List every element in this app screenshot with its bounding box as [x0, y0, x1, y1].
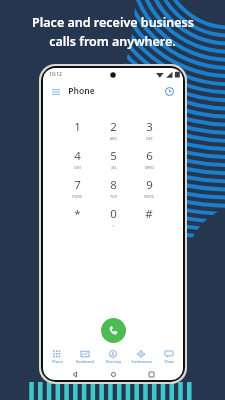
button[interactable]: Back [69, 368, 81, 380]
button[interactable]: # [131, 206, 167, 235]
staticText: 4 [74, 148, 81, 164]
button[interactable]: Call [101, 318, 126, 343]
staticText: GHI [74, 165, 81, 170]
staticText: 3 [146, 119, 153, 135]
button[interactable]: * [59, 206, 95, 235]
staticText: Directory [106, 359, 121, 364]
staticText: Phone [68, 85, 95, 97]
staticText: 5 [110, 148, 117, 164]
staticText: Phone [52, 359, 63, 364]
staticText: DEF [146, 136, 153, 141]
button[interactable]: 5 [95, 148, 131, 177]
button[interactable]: Menu [50, 86, 61, 97]
button[interactable]: Menu [50, 81, 176, 101]
staticText: # [145, 206, 153, 222]
button[interactable]: Recents [145, 368, 157, 380]
button[interactable]: Chats [155, 347, 183, 367]
button[interactable]: 7 [59, 177, 95, 206]
button[interactable]: 9 [131, 177, 167, 206]
staticText: 2 [110, 119, 117, 135]
staticText: PQRS [72, 194, 82, 199]
staticText: 7 [74, 177, 81, 193]
staticText: 1 [74, 119, 81, 135]
button[interactable]: Dashboard [71, 347, 99, 367]
staticText: 8 [110, 177, 117, 193]
staticText: Dashboard [76, 359, 94, 364]
button[interactable]: 2 [95, 119, 131, 148]
staticText: ABC [110, 136, 117, 141]
staticText: * [74, 206, 81, 222]
button[interactable]: 8 [95, 177, 131, 206]
button[interactable]: 4 [59, 148, 95, 177]
button[interactable]: 3 [131, 119, 167, 148]
button[interactable]: Recent calls [163, 85, 176, 98]
button[interactable]: Conferences [127, 347, 155, 367]
button[interactable]: 1 [59, 119, 95, 148]
staticText: WXYZ [144, 194, 154, 199]
staticText: calls from anywhere. [49, 33, 176, 50]
staticText: 10:12 [49, 71, 62, 78]
staticText: + [112, 223, 115, 228]
staticText: MNO [145, 165, 154, 170]
staticText: JKL [111, 165, 117, 170]
staticText: Chats [164, 359, 174, 364]
staticText: 6 [146, 148, 153, 164]
staticText: 9 [146, 177, 153, 193]
button[interactable]: 6 [131, 148, 167, 177]
button[interactable]: Phone [43, 347, 71, 367]
staticText: Conferences [131, 359, 152, 364]
button[interactable]: 0 [95, 206, 131, 235]
button[interactable]: Home [107, 368, 119, 380]
button[interactable]: Directory [99, 347, 127, 367]
staticText: 0 [110, 206, 117, 222]
staticText: Place and receive business [32, 14, 194, 31]
staticText: TUV [110, 194, 117, 199]
